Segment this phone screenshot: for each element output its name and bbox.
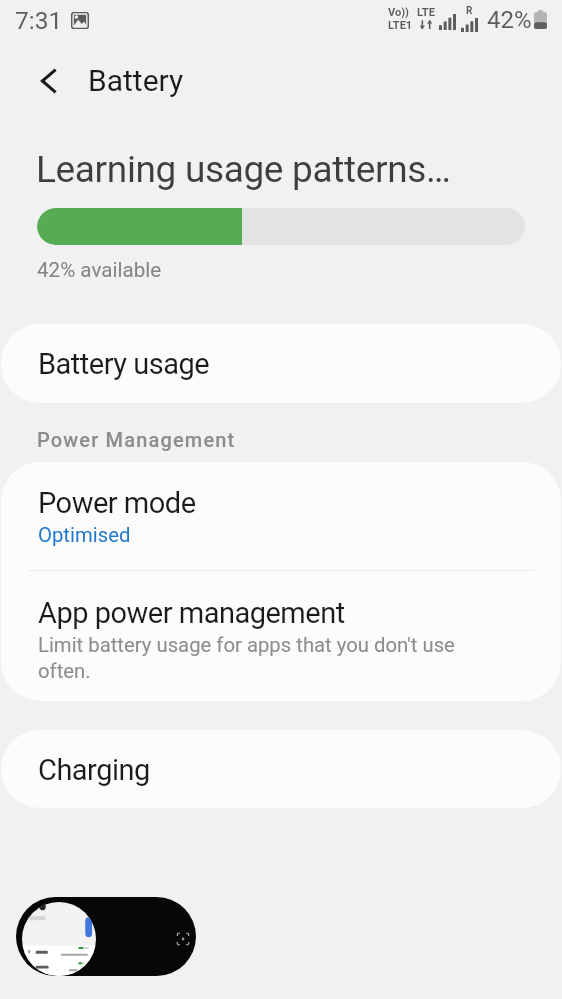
button[interactable]: Pop-up view bbox=[16, 897, 196, 976]
staticText: R bbox=[466, 5, 473, 17]
staticText: LTE1 bbox=[388, 19, 413, 32]
staticText: Power Management bbox=[37, 428, 236, 451]
staticText: Optimised bbox=[38, 523, 131, 547]
staticText: Charging bbox=[38, 753, 150, 787]
staticText: 42% available bbox=[37, 258, 162, 282]
staticText: Vo)) bbox=[388, 6, 409, 19]
staticText: LTE bbox=[417, 6, 435, 19]
button[interactable]: Battery usage bbox=[1, 324, 561, 403]
staticText: Limit battery usage for apps that you do… bbox=[38, 633, 455, 683]
staticText: 42% bbox=[487, 6, 532, 34]
button[interactable]: Power mode bbox=[1, 462, 561, 570]
button[interactable]: Back bbox=[22, 55, 74, 107]
button[interactable]: Charging bbox=[1, 730, 561, 808]
staticText: Battery usage bbox=[38, 347, 210, 381]
staticText: Learning usage patterns… bbox=[36, 148, 451, 191]
staticText: Power mode bbox=[38, 486, 196, 520]
staticText: App power management bbox=[38, 596, 345, 630]
button[interactable]: App power management bbox=[1, 571, 561, 701]
staticText: Battery bbox=[88, 63, 184, 98]
staticText: 7:31 bbox=[15, 6, 63, 35]
